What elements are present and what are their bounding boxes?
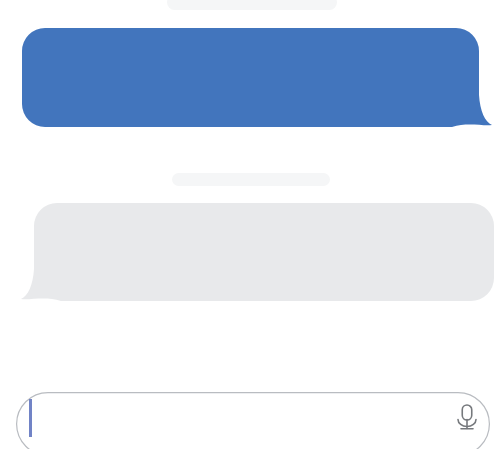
- button[interactable]: [22, 28, 492, 127]
- button[interactable]: [21, 203, 494, 301]
- button[interactable]: Voice input: [452, 400, 482, 436]
- button[interactable]: [16, 392, 490, 449]
